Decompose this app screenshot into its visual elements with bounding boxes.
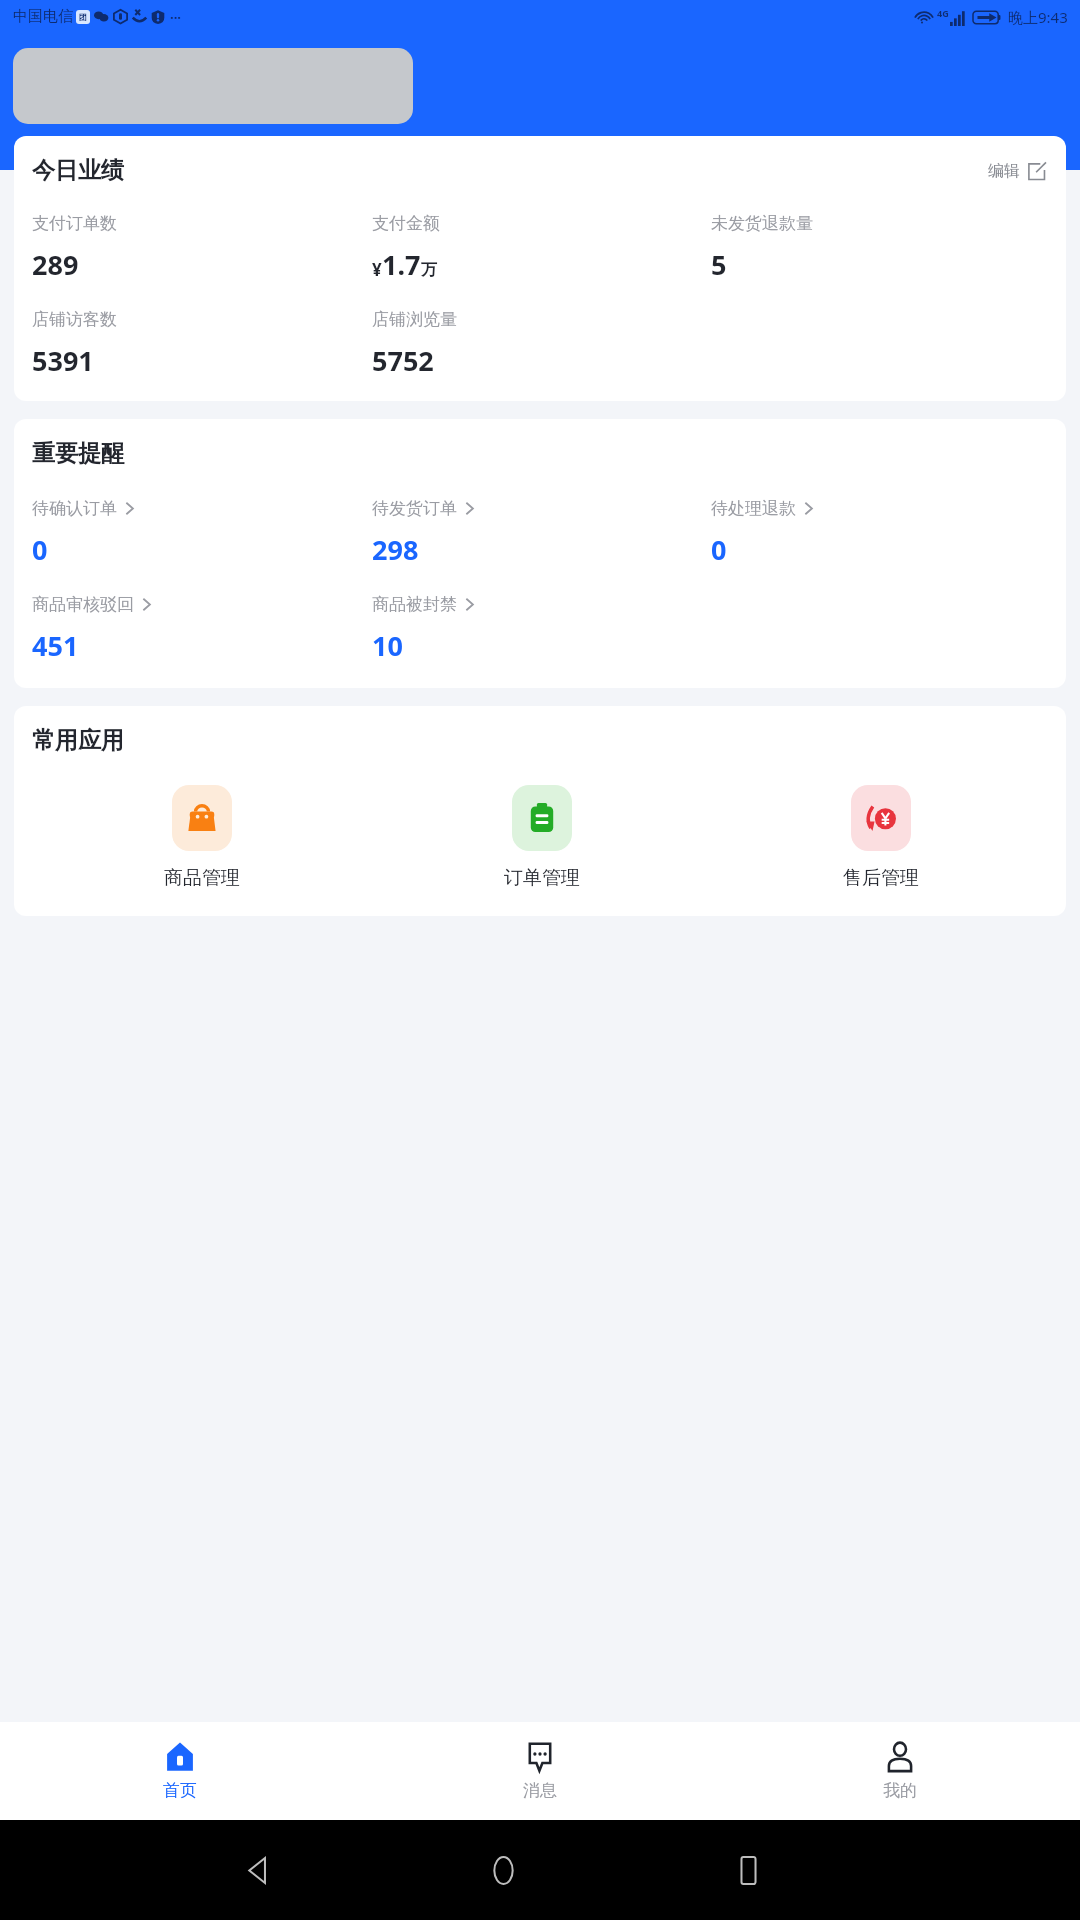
button[interactable]: 支付订单数: [32, 213, 372, 283]
staticText: 商品审核驳回: [32, 594, 134, 615]
button[interactable]: 待发货订单: [372, 498, 711, 568]
button[interactable]: 未发货退款量: [711, 213, 1050, 283]
button[interactable]: 商品审核驳回: [32, 594, 372, 664]
staticText: 店铺访客数: [32, 309, 117, 330]
other: Profile: [885, 1742, 915, 1772]
staticText: 1.7: [382, 246, 421, 283]
staticText: 0: [711, 531, 727, 568]
button[interactable]: Shop header: [13, 48, 413, 124]
staticText: 支付金额: [372, 213, 440, 234]
other: Edit: [1027, 162, 1046, 181]
staticText: 289: [32, 246, 79, 283]
staticText: ···: [170, 8, 181, 26]
staticText: 万: [421, 260, 437, 280]
staticText: 4G: [937, 7, 949, 19]
button[interactable]: 订单管理: [372, 785, 711, 890]
staticText: 售后管理: [843, 866, 919, 890]
staticText: 首页: [163, 1780, 197, 1801]
staticText: 待处理退款: [711, 498, 796, 519]
staticText: 团: [79, 12, 87, 22]
staticText: 订单管理: [504, 866, 580, 890]
staticText: 待确认订单: [32, 498, 117, 519]
staticText: 店铺浏览量: [372, 309, 457, 330]
button[interactable]: 待处理退款: [711, 498, 1050, 568]
staticText: 中国电信: [13, 7, 73, 26]
staticText: 待发货订单: [372, 498, 457, 519]
staticText: 5752: [372, 342, 434, 379]
staticText: 支付订单数: [32, 213, 117, 234]
staticText: 重要提醒: [32, 439, 124, 468]
staticText: 编辑: [988, 161, 1020, 181]
staticText: 晚上9:43: [1008, 7, 1068, 27]
staticText: 0: [32, 531, 48, 568]
other: Recents: [735, 1857, 762, 1884]
other: Home: [490, 1857, 517, 1884]
staticText: 10: [372, 627, 403, 664]
button[interactable]: 售后管理: [711, 785, 1050, 890]
other: Home: [165, 1742, 195, 1772]
staticText: 商品被封禁: [372, 594, 457, 615]
other: Messages: [525, 1742, 555, 1772]
button[interactable]: Profile: [720, 1722, 1080, 1820]
staticText: 298: [372, 531, 419, 568]
button[interactable]: 待确认订单: [32, 498, 372, 568]
staticText: ¥: [372, 258, 382, 281]
button[interactable]: 商品管理: [32, 785, 372, 890]
button[interactable]: 编辑: [984, 157, 1050, 185]
button[interactable]: 商品被封禁: [372, 594, 711, 664]
staticText: 未发货退款量: [711, 213, 813, 234]
staticText: 451: [32, 627, 79, 664]
other: Back: [245, 1857, 272, 1884]
staticText: 消息: [523, 1780, 557, 1801]
button[interactable]: 店铺访客数: [32, 309, 372, 379]
staticText: 5: [711, 246, 727, 283]
button[interactable]: 店铺浏览量: [372, 309, 711, 379]
staticText: 5391: [32, 342, 94, 379]
staticText: 我的: [883, 1780, 917, 1801]
staticText: 常用应用: [32, 726, 124, 755]
button[interactable]: Home: [0, 1722, 360, 1820]
staticText: 今日业绩: [32, 156, 124, 185]
button[interactable]: Messages: [360, 1722, 720, 1820]
button[interactable]: 支付金额: [372, 213, 711, 283]
staticText: 商品管理: [164, 866, 240, 890]
